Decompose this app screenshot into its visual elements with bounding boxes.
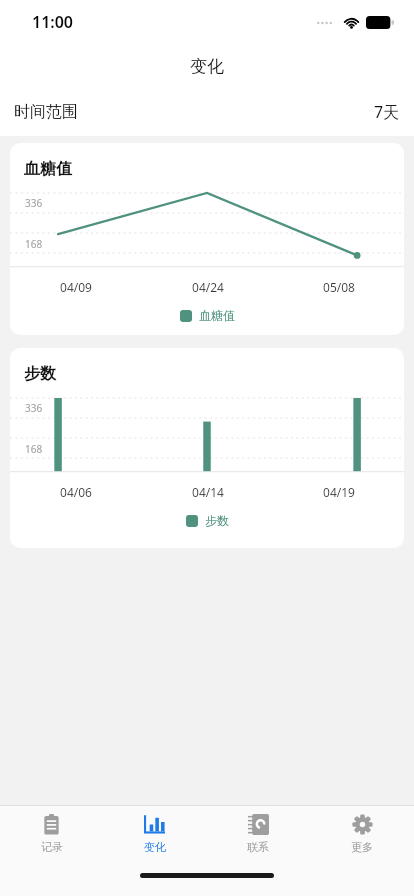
staticText: 04/19 xyxy=(323,484,355,500)
staticText: 步数 xyxy=(24,364,56,384)
staticText: 168 xyxy=(25,237,43,251)
staticText: 05/08 xyxy=(323,279,355,295)
button[interactable]: 更多 xyxy=(310,806,414,862)
other: 变化 xyxy=(144,814,165,835)
staticText: 336 xyxy=(25,401,43,415)
staticText: 变化 xyxy=(190,56,224,77)
staticText: 04/09 xyxy=(60,279,92,295)
staticText: 血糖值 xyxy=(24,159,72,179)
other: 联系 xyxy=(248,814,269,835)
button[interactable]: 血糖值 xyxy=(10,143,404,335)
staticText: 04/24 xyxy=(192,279,224,295)
staticText: 04/14 xyxy=(192,484,224,500)
button[interactable]: 变化 xyxy=(103,806,206,862)
staticText: 血糖值 xyxy=(199,308,235,323)
button[interactable]: 时间范围 xyxy=(0,88,414,136)
staticText: 联系 xyxy=(247,840,269,854)
staticText: 336 xyxy=(25,196,43,210)
staticText: 更多 xyxy=(351,840,373,854)
staticText: 11:00 xyxy=(32,11,74,33)
staticText: 变化 xyxy=(144,840,166,854)
staticText: 7天 xyxy=(374,101,400,123)
button[interactable]: 联系 xyxy=(206,806,310,862)
button[interactable]: 记录 xyxy=(0,806,103,862)
staticText: 时间范围 xyxy=(14,102,78,122)
staticText: 04/06 xyxy=(60,484,92,500)
button[interactable]: 步数 xyxy=(10,348,404,548)
staticText: 记录 xyxy=(41,840,63,854)
other: 更多 xyxy=(352,814,373,835)
staticText: 步数 xyxy=(205,513,229,528)
other: 记录 xyxy=(41,814,62,835)
staticText: 168 xyxy=(25,442,43,456)
